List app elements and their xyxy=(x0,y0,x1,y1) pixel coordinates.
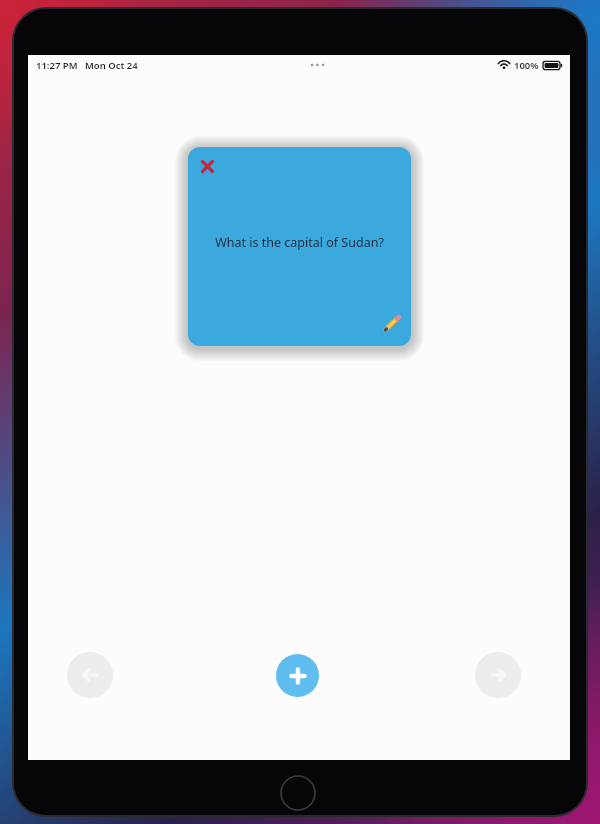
staticText: What is the capital of Sudan? xyxy=(202,234,397,251)
button[interactable]: Previous card xyxy=(67,652,113,698)
button[interactable]: Add card xyxy=(276,654,319,697)
staticText: 100% xyxy=(514,59,539,72)
button[interactable]: Delete card xyxy=(196,155,218,177)
button[interactable]: Next card xyxy=(475,652,521,698)
button[interactable]: Delete card xyxy=(188,147,411,346)
staticText: 11:27 PM xyxy=(36,59,78,72)
button[interactable]: Edit card xyxy=(379,312,403,336)
staticText: Mon Oct 24 xyxy=(85,59,138,72)
